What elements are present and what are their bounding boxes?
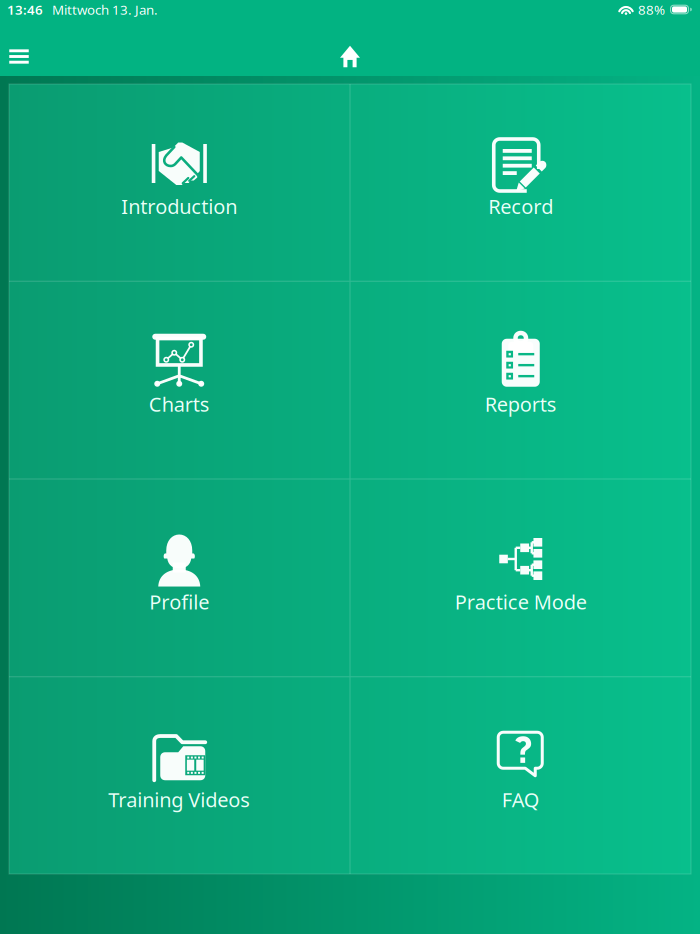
button[interactable]: Charts	[9, 282, 349, 479]
staticText: Practice Mode	[455, 588, 587, 615]
staticText: Record	[488, 193, 553, 220]
button[interactable]: Reports	[350, 282, 691, 479]
staticText: 13:46	[7, 1, 43, 18]
button[interactable]: Record	[350, 84, 691, 281]
button[interactable]: Training Videos	[9, 677, 349, 874]
button[interactable]: Menu	[0, 33, 38, 80]
staticText: Introduction	[121, 193, 237, 220]
button[interactable]: Profile	[9, 479, 349, 676]
button[interactable]: Practice Mode	[350, 479, 691, 676]
button[interactable]: Introduction	[9, 84, 349, 281]
staticText: Profile	[149, 588, 209, 615]
staticText: Charts	[149, 391, 210, 417]
button[interactable]: Home	[328, 33, 372, 80]
button[interactable]: FAQ	[350, 677, 691, 874]
staticText: Reports	[485, 391, 557, 417]
staticText: Mittwoch 13. Jan.	[52, 1, 158, 18]
staticText: 88%	[638, 1, 665, 18]
staticText: FAQ	[502, 786, 540, 813]
staticText: Training Videos	[108, 786, 250, 813]
